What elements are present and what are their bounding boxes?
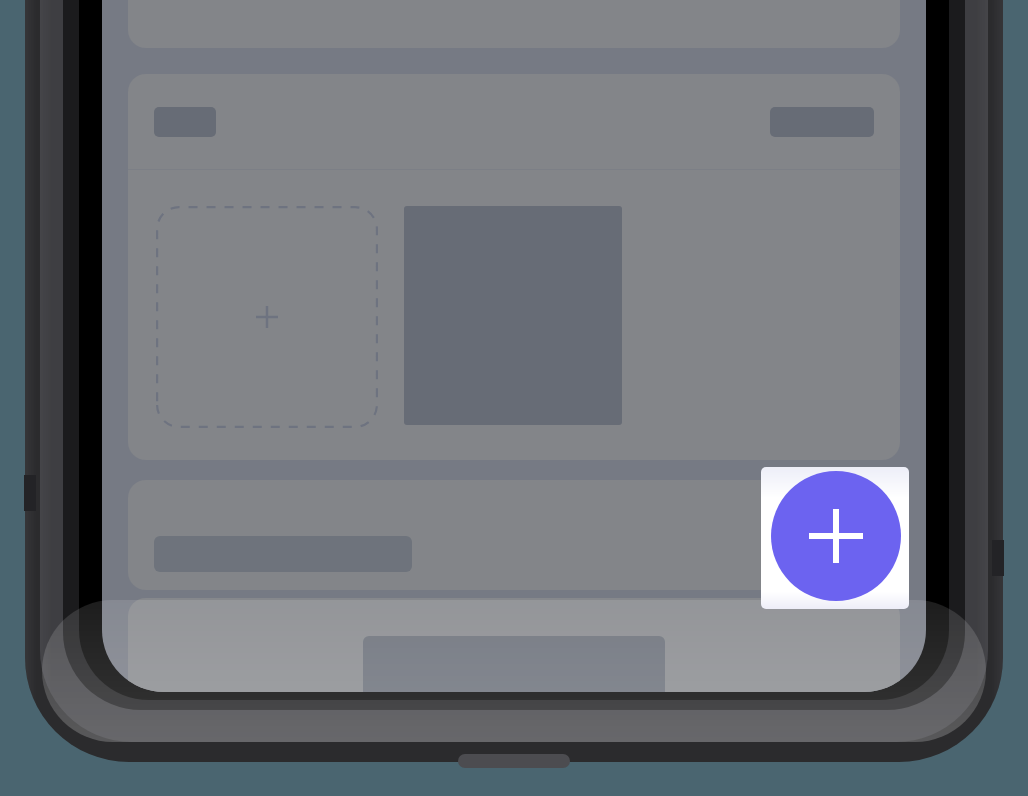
button[interactable] xyxy=(128,480,900,590)
button[interactable] xyxy=(128,598,900,692)
button[interactable]: Add photo xyxy=(128,74,900,460)
button[interactable]: Add xyxy=(771,471,901,601)
